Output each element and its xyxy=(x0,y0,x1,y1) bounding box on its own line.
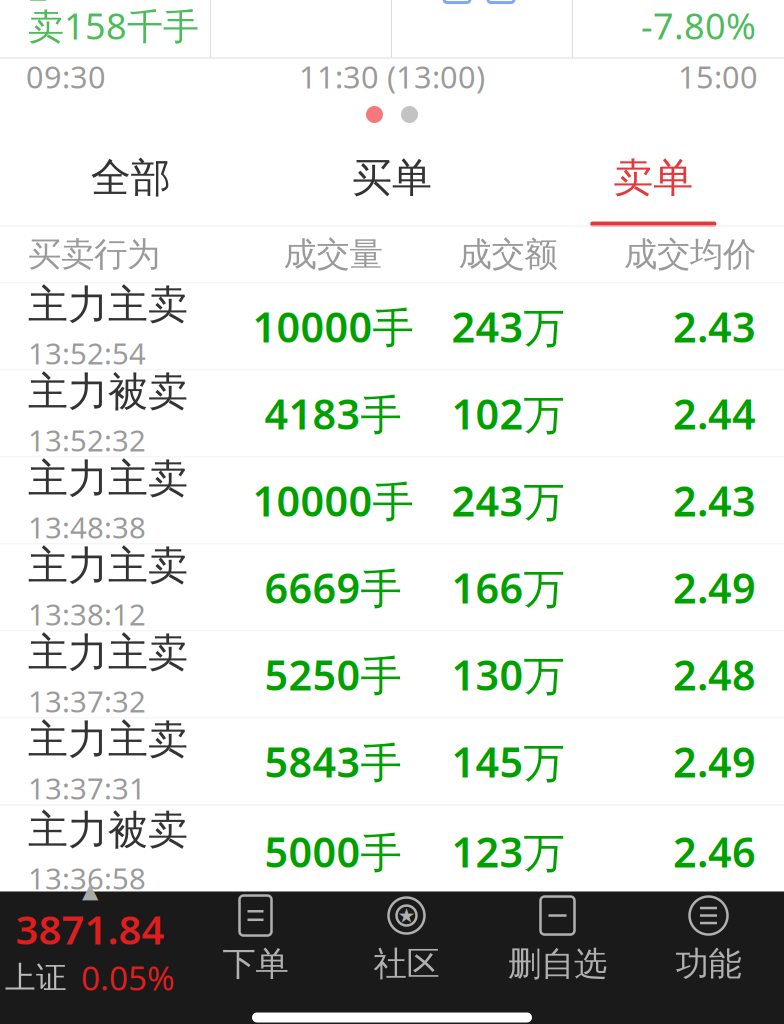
staticText: ★ xyxy=(397,904,415,927)
staticText: 145万 xyxy=(451,734,564,789)
staticText: 买单 xyxy=(352,153,432,202)
staticText: 成交均价 xyxy=(624,234,756,275)
staticText: 13:52:54 xyxy=(28,334,146,373)
staticText: 10000手 xyxy=(252,299,413,354)
staticText: 13:38:12 xyxy=(28,595,146,634)
staticText: 主力主卖 xyxy=(28,628,188,678)
button[interactable]: 主力被卖 xyxy=(0,370,784,456)
staticText: 主力主卖 xyxy=(28,541,188,591)
staticText: 2.43 xyxy=(673,299,756,354)
staticText: 3871.84 xyxy=(15,902,164,955)
staticText: 2.44 xyxy=(673,386,756,441)
staticText: 下单 xyxy=(222,943,288,984)
staticText: 全部 xyxy=(91,153,171,202)
button[interactable]: 卖单 xyxy=(523,134,784,226)
staticText: 13:37:32 xyxy=(28,682,146,721)
staticText: 4183手 xyxy=(264,386,401,441)
staticText: 主力被卖 xyxy=(28,805,188,855)
staticText: 删自选 xyxy=(508,943,607,984)
staticText: 上证 xyxy=(5,959,67,996)
staticText: 13:52:32 xyxy=(28,421,146,460)
staticText: 123万 xyxy=(451,824,564,879)
staticText: 卖单 xyxy=(613,153,693,202)
staticText: 功能 xyxy=(675,943,741,984)
staticText: 2.46 xyxy=(673,824,756,879)
staticText: 11:30 (13:00) xyxy=(299,56,485,97)
staticText: 卖158千手 xyxy=(28,2,199,49)
staticText: 0.05% xyxy=(81,955,175,1000)
staticText: 买卖行为 xyxy=(28,234,160,275)
button[interactable]: 主力主卖 xyxy=(0,631,784,717)
staticText: 102万 xyxy=(451,386,564,441)
staticText: 主力主卖 xyxy=(28,454,188,504)
staticText: 2.49 xyxy=(673,734,756,789)
staticText: 13:48:38 xyxy=(28,508,146,547)
staticText: 成交额 xyxy=(458,234,557,275)
staticText: 10000手 xyxy=(252,473,413,528)
staticText: 166万 xyxy=(451,560,564,615)
button[interactable]: 主力主卖 xyxy=(0,544,784,630)
staticText: 2.43 xyxy=(673,473,756,528)
button[interactable]: 删自选 xyxy=(482,891,633,986)
staticText: 5000手 xyxy=(264,824,401,879)
staticText: -7.80% xyxy=(641,2,756,49)
button[interactable]: 全部 xyxy=(0,134,261,226)
button[interactable]: 主力主卖 xyxy=(0,283,784,369)
staticText: 成交量 xyxy=(283,234,382,275)
staticText: 13:36:58 xyxy=(28,859,146,898)
button[interactable]: 主力主卖 xyxy=(0,718,784,804)
button[interactable]: 主力主卖 xyxy=(0,457,784,543)
button[interactable]: 社区 xyxy=(331,891,482,986)
staticText: 主力被卖 xyxy=(28,367,188,417)
staticText: 2.49 xyxy=(673,560,756,615)
staticText: 09:30 xyxy=(26,56,106,97)
staticText: 2.48 xyxy=(673,647,756,702)
staticText: 5843手 xyxy=(264,734,401,789)
staticText: 130万 xyxy=(451,647,564,702)
staticText: 主力主卖 xyxy=(28,715,188,765)
button[interactable]: 功能 xyxy=(633,891,784,986)
staticText: 6669手 xyxy=(264,560,401,615)
staticText: 15:00 xyxy=(678,56,758,97)
staticText: 243万 xyxy=(451,299,564,354)
button[interactable]: 下单 xyxy=(180,891,331,986)
button[interactable]: ▲ xyxy=(0,891,180,986)
staticText: 主力主卖 xyxy=(28,280,188,330)
staticText: ▲ xyxy=(82,878,98,902)
staticText: 5250手 xyxy=(264,647,401,702)
staticText: 社区 xyxy=(373,943,439,984)
staticText: 243万 xyxy=(451,473,564,528)
button[interactable]: 买单 xyxy=(261,134,523,226)
staticText: 13:37:31 xyxy=(28,769,146,808)
